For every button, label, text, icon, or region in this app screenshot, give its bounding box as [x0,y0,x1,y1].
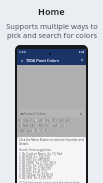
staticText: Click the Menu Button to view the Favori… [19,138,84,145]
button[interactable]: PEACH [45,119,51,122]
staticText: YELLOW [30,119,37,122]
button[interactable]: PINK [35,129,39,132]
button[interactable]: LAVENDER [52,124,59,127]
staticText: GREEN [38,119,44,122]
button[interactable]: Menu [19,58,24,63]
staticText: CRIMSON [37,124,44,127]
button[interactable]: GOLD [60,124,65,127]
staticText: TEAL [40,129,44,132]
button[interactable]: CHARCOAL [18,129,26,132]
button[interactable]: SILVER [45,124,51,127]
button[interactable]: INDIGO [59,119,65,122]
staticText: VIOLET [52,119,58,122]
staticText: CHARCOAL [18,129,26,132]
button[interactable]: More options [80,58,84,62]
button[interactable]: CRIMSON [37,124,44,127]
staticText: PLUM [45,129,50,132]
button[interactable]: ALUMINIUM [27,129,34,132]
button[interactable]: MAROON [23,124,29,127]
staticText: RED [18,119,22,122]
staticText: TIOA Paint Colors [26,58,59,63]
staticText: Home [38,5,65,17]
button[interactable]: Search Colors [19,109,84,117]
button[interactable]: PLUM [45,129,50,132]
button[interactable]: WHITE [66,119,72,122]
staticText: TAN [18,124,22,127]
staticText: Search Colors [24,111,46,116]
staticText: INDIGO [59,119,65,122]
staticText: MAROON [23,124,29,127]
staticText: SILVER [45,124,51,127]
button[interactable]: YELLOW [30,119,37,122]
button[interactable]: ORANGE [23,119,29,122]
button[interactable]: RED [18,119,22,122]
staticText: ORANGE [23,119,29,122]
staticText: ALUMINIUM [27,129,34,132]
staticText: LAVENDER [52,124,59,127]
staticText: Supports multiple ways to pick and searc… [6,21,98,41]
button[interactable]: TAN [18,124,22,127]
button[interactable]: BRONZE [30,124,36,127]
staticText: WHITE [66,119,72,122]
button[interactable]: GREEN [38,119,44,122]
button[interactable]: VIOLET [52,119,58,122]
staticText: GOLD [60,124,65,127]
staticText: PEACH [45,119,51,122]
staticText: PINK [35,129,39,132]
staticText: BRONZE [30,124,36,127]
staticText: Search from suggestion 1. By Code or Nam… [19,148,63,179]
button[interactable]: TEAL [40,129,44,132]
staticText: * Click the image icon to pick the color… [19,181,81,183]
